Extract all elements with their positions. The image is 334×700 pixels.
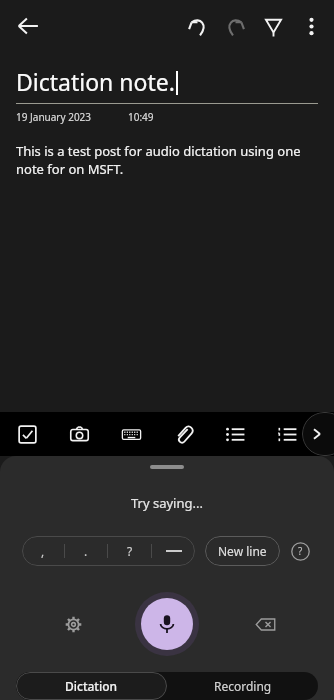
button[interactable]: ? <box>108 536 151 566</box>
staticText: Recording <box>214 678 272 694</box>
button[interactable]: Numbered list <box>272 419 302 449</box>
staticText: ? <box>127 543 133 559</box>
staticText: 10:49 <box>128 110 154 124</box>
staticText: 19 January 2023 <box>16 110 92 124</box>
staticText: This is a test post for audio dictation … <box>16 142 306 178</box>
button[interactable]: Checklist <box>12 419 42 449</box>
staticText: , <box>41 543 45 559</box>
button[interactable]: Highlighter <box>254 7 292 45</box>
button[interactable]: More options <box>292 7 330 45</box>
button[interactable]: Camera <box>64 419 94 449</box>
button[interactable]: Dictation <box>16 672 167 700</box>
button[interactable]: Recording <box>167 672 318 700</box>
button[interactable]: Attach file <box>168 419 198 449</box>
staticText: New line <box>218 543 267 559</box>
button[interactable]: New line <box>205 536 280 566</box>
staticText: . <box>84 543 88 559</box>
button[interactable]: More formatting <box>302 412 334 456</box>
button[interactable]: Microphone <box>141 598 193 650</box>
staticText: Dictation <box>65 678 118 694</box>
staticText: Dictation note. <box>16 66 175 97</box>
button[interactable]: Space <box>152 536 195 566</box>
button[interactable]: Backspace <box>248 607 282 641</box>
button[interactable]: Help <box>288 539 312 563</box>
button[interactable]: Redo <box>216 7 254 45</box>
button[interactable]: Undo <box>178 7 216 45</box>
button[interactable]: . <box>65 536 107 566</box>
button[interactable]: Keyboard <box>116 419 146 449</box>
button[interactable]: Bulleted list <box>220 419 250 449</box>
button[interactable]: , <box>22 536 64 566</box>
staticText: ? <box>298 544 303 558</box>
button[interactable]: Back <box>8 6 48 46</box>
button[interactable]: Settings <box>56 607 90 641</box>
staticText: Try saying... <box>131 494 203 512</box>
